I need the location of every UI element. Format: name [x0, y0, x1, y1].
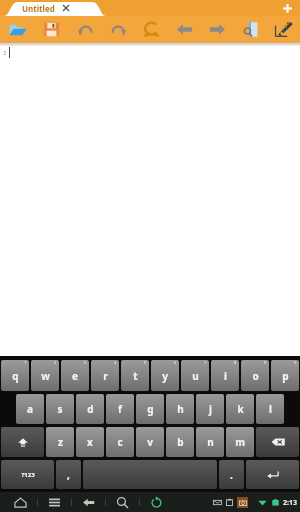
button[interactable]: Edit [267, 16, 300, 43]
button[interactable]: m [226, 427, 254, 457]
button[interactable]: l [256, 394, 284, 424]
button[interactable]: Open file [234, 16, 267, 43]
button[interactable]: t [121, 360, 149, 391]
button[interactable]: b [166, 427, 194, 457]
button[interactable]: Shift [1, 427, 44, 457]
staticText: 2 [54, 360, 57, 365]
staticText: 1 [24, 360, 27, 365]
button[interactable]: Home [4, 492, 37, 512]
button[interactable]: f [106, 394, 134, 424]
button[interactable]: , [56, 460, 81, 489]
staticText: 0 [294, 360, 297, 365]
staticText: 2:13 [283, 498, 297, 508]
staticText: u [192, 369, 199, 383]
button[interactable]: s [46, 394, 74, 424]
button[interactable]: i [211, 360, 239, 391]
staticText: a [27, 402, 33, 416]
staticText: n [207, 435, 214, 449]
staticText: 8 [234, 360, 237, 365]
button[interactable]: Back [168, 16, 201, 43]
button[interactable]: Backspace [256, 427, 299, 457]
button[interactable]: Back [72, 492, 105, 512]
staticText: i [224, 369, 227, 383]
staticText: t [133, 369, 138, 383]
button[interactable]: e [61, 360, 89, 391]
staticText: q [12, 369, 19, 383]
staticText: 1 [3, 49, 7, 57]
staticText: l [269, 402, 272, 416]
staticText: 9 [264, 360, 267, 365]
staticText: p [282, 369, 289, 383]
button[interactable]: q [1, 360, 29, 391]
staticText: r [103, 369, 108, 383]
staticText: g [147, 402, 154, 416]
button[interactable]: x [76, 427, 104, 457]
staticText: v [147, 435, 153, 449]
button[interactable]: a [16, 394, 44, 424]
button[interactable]: Forward [201, 16, 234, 43]
staticText: j [209, 402, 212, 416]
staticText: 4 [114, 360, 117, 365]
button[interactable]: h [166, 394, 194, 424]
button[interactable]: v [136, 427, 164, 457]
button[interactable]: k [226, 394, 254, 424]
staticText: . [230, 468, 233, 482]
staticText: 7 [204, 360, 207, 365]
button[interactable]: Symbols [135, 16, 168, 43]
button[interactable]: Redo [102, 16, 135, 43]
staticText: m [235, 435, 245, 449]
button[interactable]: z [46, 427, 74, 457]
button[interactable]: o [241, 360, 269, 391]
staticText: s [57, 402, 63, 416]
staticText: k [237, 402, 244, 416]
button[interactable]: Search [106, 492, 139, 512]
button[interactable]: c [106, 427, 134, 457]
button[interactable]: p [271, 360, 299, 391]
staticText: c [117, 435, 123, 449]
button[interactable]: . [219, 460, 244, 489]
staticText: x [87, 435, 93, 449]
button[interactable]: Close tab [61, 3, 71, 13]
button[interactable]: r [91, 360, 119, 391]
button[interactable]: g [136, 394, 164, 424]
button[interactable]: d [76, 394, 104, 424]
staticText: y [162, 369, 168, 383]
button[interactable]: Menu [38, 492, 71, 512]
button[interactable]: Open [0, 16, 34, 43]
button[interactable]: j [196, 394, 224, 424]
button[interactable]: y [151, 360, 179, 391]
button[interactable]: Enter [246, 460, 299, 489]
staticText: e [72, 369, 78, 383]
button[interactable]: w [31, 360, 59, 391]
staticText: b [177, 435, 184, 449]
staticText: h [177, 402, 184, 416]
staticText: d [87, 402, 94, 416]
staticText: 5 [144, 360, 147, 365]
button[interactable]: ?123 [1, 460, 54, 489]
staticText: f [118, 402, 122, 416]
button[interactable]: New tab [280, 1, 294, 15]
button[interactable]: n [196, 427, 224, 457]
staticText: o [252, 369, 259, 383]
staticText: 6 [174, 360, 177, 365]
staticText: z [58, 435, 63, 449]
button[interactable]: Rotate [140, 492, 173, 512]
staticText: Untitled [22, 3, 55, 14]
button[interactable]: Space [83, 460, 217, 489]
button[interactable]: Save [34, 16, 68, 43]
staticText: w [41, 369, 50, 383]
staticText: 3 [84, 360, 87, 365]
button[interactable]: Undo [68, 16, 102, 43]
button[interactable]: u [181, 360, 209, 391]
staticText: ?123 [21, 471, 35, 479]
staticText: , [67, 468, 70, 482]
